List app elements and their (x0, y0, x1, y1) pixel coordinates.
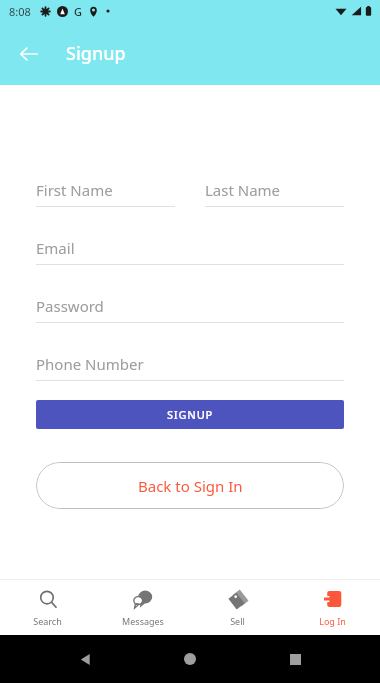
staticText: Email (36, 238, 75, 258)
button[interactable]: Back to Sign In (36, 462, 344, 509)
staticText: Messages (122, 615, 164, 627)
staticText: SIGNUP (167, 407, 214, 422)
staticText: G (74, 4, 82, 19)
staticText: First Name (36, 180, 113, 200)
staticText: Sell (230, 615, 245, 627)
button[interactable]: Search (0, 580, 95, 635)
button[interactable]: SIGNUP (36, 400, 344, 429)
button[interactable]: Messages (95, 580, 190, 635)
staticText: Search (33, 615, 62, 627)
staticText: 8:08 (9, 4, 31, 19)
button[interactable]: Home (170, 639, 210, 679)
staticText: Password (36, 296, 104, 316)
staticText: Last Name (205, 180, 281, 200)
staticText: Log In (319, 615, 346, 627)
button[interactable]: Sell (190, 580, 285, 635)
button[interactable]: Recents (275, 639, 315, 679)
staticText: Signup (66, 41, 126, 66)
button[interactable]: Back (10, 35, 48, 73)
button[interactable]: Back (65, 639, 105, 679)
button[interactable]: Log In (285, 580, 380, 635)
staticText: Phone Number (36, 354, 144, 374)
staticText: Back to Sign In (138, 476, 243, 496)
